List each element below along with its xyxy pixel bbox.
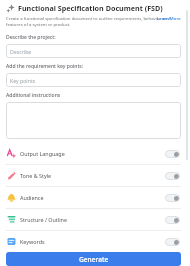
button[interactable]: Tone & Style <box>6 165 181 186</box>
button[interactable]: Audience <box>6 187 181 208</box>
staticText: Describe the project: <box>6 34 56 41</box>
staticText: Generate <box>79 255 109 264</box>
staticText: Key points <box>10 77 36 84</box>
staticText: Structure / Outline <box>20 216 67 223</box>
staticText: Output Language <box>20 150 65 157</box>
staticText: Keywords <box>20 238 45 245</box>
staticText: Learn More <box>157 15 181 21</box>
button[interactable]: Toggle option <box>165 194 180 202</box>
button[interactable]: Toggle option <box>165 150 180 158</box>
button[interactable] <box>6 102 181 139</box>
button[interactable]: Structure / Outline <box>6 209 181 230</box>
button[interactable]: Toggle option <box>165 238 180 246</box>
staticText: Add the requirement key points: <box>6 63 84 70</box>
staticText: Additional instructions <box>6 92 61 99</box>
button[interactable]: Output Language <box>6 143 181 164</box>
button[interactable]: Key points <box>6 73 181 87</box>
button[interactable]: Toggle option <box>165 172 180 180</box>
staticText: Create a functional specification docume… <box>6 15 179 27</box>
staticText: Describe <box>10 48 32 55</box>
button[interactable]: Keywords <box>6 231 181 252</box>
staticText: Functional Specification Document (FSD) <box>18 3 163 13</box>
button[interactable]: Generate <box>6 252 181 266</box>
button[interactable]: Describe <box>6 44 181 58</box>
button[interactable]: Learn More <box>157 15 181 21</box>
button[interactable]: Toggle option <box>165 216 180 224</box>
staticText: Tone & Style <box>20 172 52 179</box>
staticText: Audience <box>20 194 44 201</box>
